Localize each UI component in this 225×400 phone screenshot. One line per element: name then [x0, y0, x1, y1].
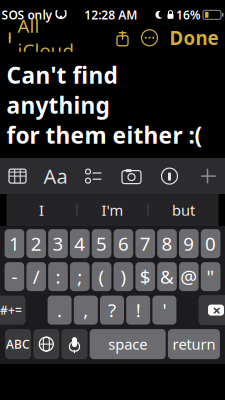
button[interactable]: 8	[157, 229, 177, 258]
button[interactable]: ;	[70, 262, 90, 291]
staticText: I'm	[101, 200, 123, 220]
button[interactable]: :	[48, 262, 68, 291]
button[interactable]: 1	[5, 229, 24, 258]
staticText: return	[172, 334, 215, 354]
button[interactable]: but	[148, 195, 218, 225]
staticText: 4	[74, 231, 85, 256]
staticText: Aa	[43, 163, 67, 189]
staticText: 6	[118, 231, 129, 256]
button[interactable]: I	[6, 195, 76, 225]
button[interactable]: All iCloud	[0, 9, 79, 67]
button[interactable]: I'm	[77, 195, 147, 225]
button[interactable]: #+=	[0, 296, 25, 325]
button[interactable]: return	[168, 329, 220, 359]
button[interactable]: )	[114, 262, 133, 291]
button[interactable]: '	[152, 296, 176, 325]
button[interactable]: 0	[201, 229, 220, 258]
button[interactable]: Checklist	[78, 162, 108, 190]
button[interactable]: Dictation	[61, 329, 87, 359]
staticText: 1	[9, 231, 20, 256]
button[interactable]: @	[179, 262, 199, 291]
staticText: I	[39, 200, 44, 220]
staticText: /	[33, 264, 40, 289]
button[interactable]: Format	[40, 162, 70, 190]
button[interactable]: .	[48, 296, 72, 325]
staticText: 12:28 AM	[84, 7, 137, 23]
staticText: Can't find anything for them either :(	[6, 60, 202, 150]
button[interactable]: 9	[179, 229, 199, 258]
button[interactable]: Delete	[198, 295, 225, 325]
staticText: -	[11, 264, 17, 289]
staticText: ;	[77, 264, 82, 289]
button[interactable]: &	[157, 262, 177, 291]
staticText: 5	[96, 231, 107, 256]
button[interactable]: 4	[70, 229, 90, 258]
button[interactable]: Camera	[116, 162, 146, 190]
button[interactable]: Next keyboard	[33, 329, 59, 359]
staticText: $	[140, 264, 151, 289]
staticText: but	[172, 200, 195, 220]
staticText: ?	[108, 298, 116, 322]
staticText: (	[99, 264, 105, 289]
button[interactable]: Table	[2, 162, 32, 190]
staticText: 8	[161, 231, 172, 256]
staticText: :	[55, 264, 60, 289]
button[interactable]: (	[92, 262, 111, 291]
button[interactable]: ABC	[5, 329, 31, 359]
staticText: '	[162, 298, 166, 322]
staticText: "	[207, 264, 215, 289]
button[interactable]: 2	[26, 229, 46, 258]
staticText: .	[57, 298, 62, 322]
staticText: &	[160, 264, 174, 289]
staticText: 16%	[176, 7, 201, 23]
button[interactable]: 3	[48, 229, 68, 258]
button[interactable]: More	[135, 26, 163, 50]
button[interactable]: 5	[92, 229, 111, 258]
staticText: All iCloud	[17, 13, 73, 63]
staticText: #+=	[0, 302, 22, 318]
button[interactable]: ,	[74, 296, 98, 325]
button[interactable]: -	[5, 262, 24, 291]
staticText: ,	[83, 298, 88, 322]
staticText: 9	[183, 231, 194, 256]
staticText: 7	[140, 231, 151, 256]
staticText: space	[108, 334, 147, 354]
button[interactable]: Close keyboard	[192, 162, 222, 190]
staticText: !	[136, 298, 141, 322]
button[interactable]: space	[90, 329, 166, 359]
staticText: Done	[169, 25, 218, 50]
staticText: 0	[205, 231, 216, 256]
button[interactable]: Done	[163, 21, 224, 54]
button[interactable]: Markup	[154, 162, 184, 190]
button[interactable]: "	[201, 262, 220, 291]
button[interactable]: 6	[114, 229, 133, 258]
staticText: 3	[52, 231, 63, 256]
staticText: )	[120, 264, 126, 289]
staticText: SOS only	[1, 7, 52, 23]
button[interactable]: Share	[109, 26, 135, 50]
staticText: 2	[31, 231, 42, 256]
button[interactable]: $	[135, 262, 155, 291]
staticText: ×	[212, 300, 220, 320]
staticText: ABC	[6, 336, 30, 352]
button[interactable]: ?	[100, 296, 124, 325]
button[interactable]: !	[126, 296, 150, 325]
staticText: @	[180, 264, 197, 289]
button[interactable]: 7	[135, 229, 155, 258]
button[interactable]: /	[26, 262, 46, 291]
